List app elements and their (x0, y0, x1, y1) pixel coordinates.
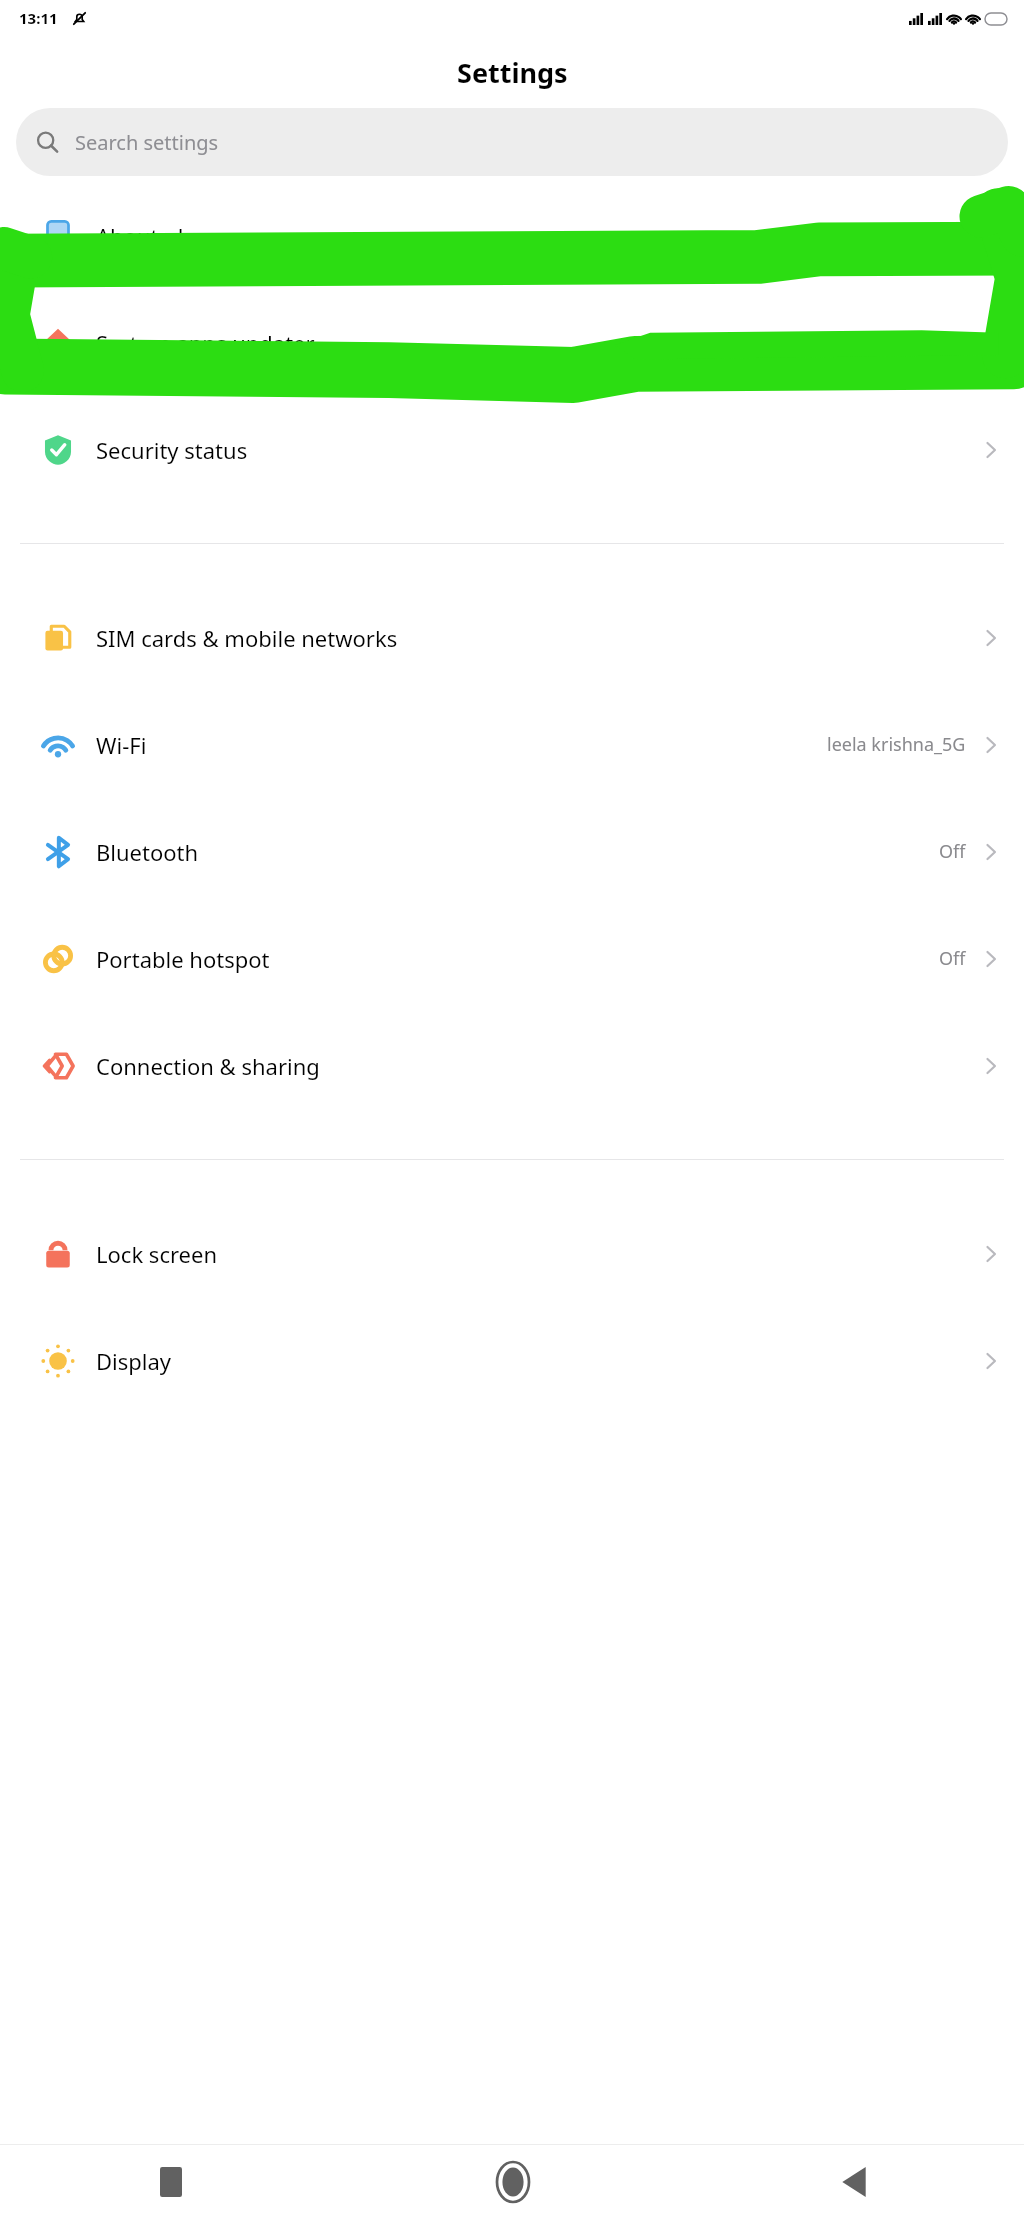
staticText: Wi-Fi (96, 730, 827, 760)
staticText: leela krishna_5G (827, 732, 966, 757)
button[interactable]: About phone (0, 182, 1024, 289)
staticText: 13:11 (19, 8, 58, 28)
staticText: Search settings (75, 129, 219, 156)
button[interactable]: Back (683, 2145, 1024, 2219)
staticText: Portable hotspot (96, 944, 939, 974)
button[interactable]: Portable hotspot (0, 905, 1024, 1012)
button[interactable]: Connection & sharing (0, 1012, 1024, 1119)
button[interactable]: Display (0, 1307, 1024, 1414)
button[interactable]: Home (342, 2145, 683, 2219)
staticText: Bluetooth (96, 837, 939, 867)
staticText: Settings (457, 54, 568, 91)
button[interactable]: Search settings (16, 108, 1008, 176)
button[interactable]: Bluetooth (0, 798, 1024, 905)
staticText: System apps updater (96, 328, 980, 358)
button[interactable]: System apps updater (0, 289, 1024, 396)
staticText: Security status (96, 435, 980, 465)
staticText: Connection & sharing (96, 1051, 980, 1081)
staticText: SIM cards & mobile networks (96, 623, 980, 653)
button[interactable]: Security status (0, 396, 1024, 503)
staticText: Lock screen (96, 1239, 980, 1269)
button[interactable]: Wi-Fi (0, 691, 1024, 798)
button[interactable]: Lock screen (0, 1200, 1024, 1307)
staticText: Off (939, 946, 966, 971)
staticText: Display (96, 1346, 980, 1376)
button[interactable]: SIM cards & mobile networks (0, 584, 1024, 691)
staticText: Off (939, 839, 966, 864)
button[interactable]: Recent apps (0, 2145, 342, 2219)
staticText: About phone (96, 221, 824, 251)
